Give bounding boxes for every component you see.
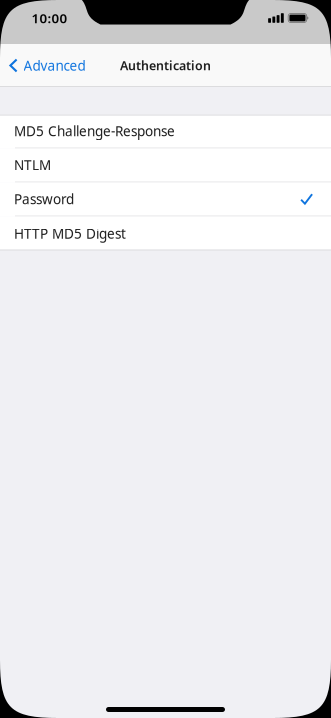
staticText: MD5 Challenge-Response: [14, 122, 175, 140]
staticText: 10:00: [31, 9, 67, 27]
button[interactable]: Password: [0, 182, 331, 216]
button[interactable]: NTLM: [0, 148, 331, 182]
button[interactable]: Advanced: [0, 48, 85, 82]
staticText: NTLM: [14, 156, 51, 174]
staticText: Advanced: [23, 56, 85, 74]
staticText: HTTP MD5 Digest: [14, 224, 126, 242]
staticText: Password: [14, 190, 74, 208]
button[interactable]: MD5 Challenge-Response: [0, 114, 331, 148]
button[interactable]: HTTP MD5 Digest: [0, 216, 331, 250]
staticText: Authentication: [120, 57, 211, 74]
